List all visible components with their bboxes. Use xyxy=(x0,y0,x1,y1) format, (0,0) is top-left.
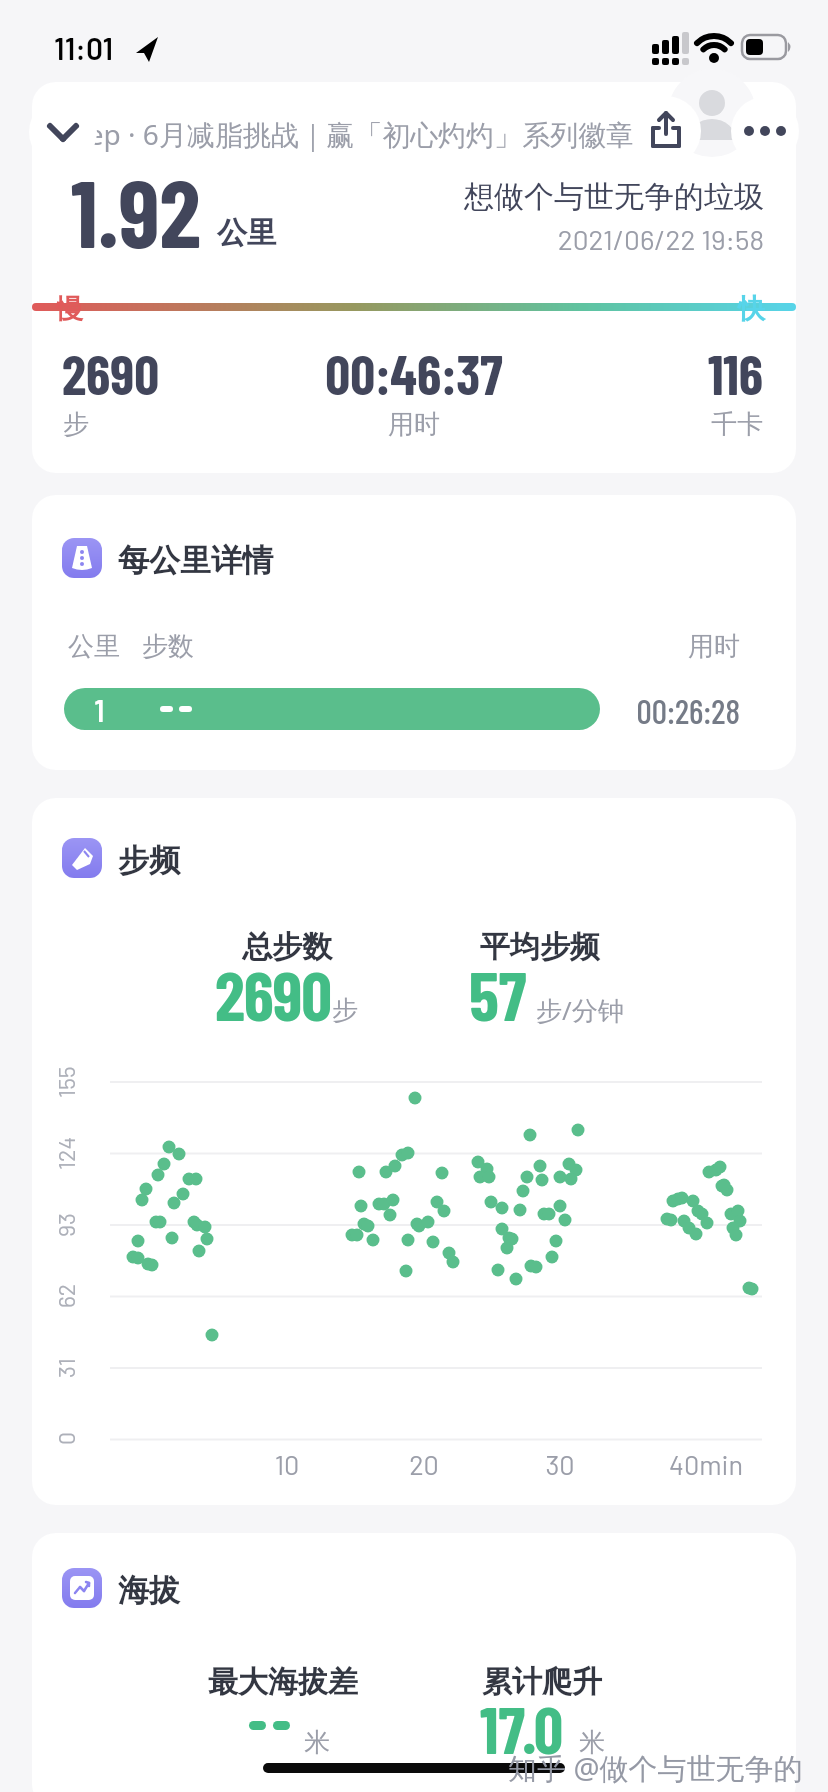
staticText: 米 xyxy=(579,1726,605,1759)
staticText: 93 xyxy=(52,1213,80,1237)
staticText: 平均步频 xyxy=(405,928,675,966)
staticText: 2690 xyxy=(62,340,160,406)
staticText: 30 xyxy=(528,1448,592,1480)
staticText: 62 xyxy=(52,1283,80,1308)
staticText: 快 xyxy=(738,292,765,326)
staticText: 40min xyxy=(656,1448,756,1480)
staticText: 2021/06/22 19:58 xyxy=(400,222,764,256)
staticText: 1.92 xyxy=(71,154,201,267)
staticText: 用时 xyxy=(32,408,796,441)
staticText: 10 xyxy=(255,1448,319,1480)
staticText: 最大海拔差 xyxy=(148,1663,418,1701)
staticText: 17.0 xyxy=(480,1689,564,1767)
staticText: 每公里详情 xyxy=(118,541,273,580)
staticText: 步频 xyxy=(118,841,180,880)
button[interactable]: 1 xyxy=(64,688,600,730)
staticText: 155 xyxy=(52,1066,80,1098)
staticText: 步 xyxy=(63,408,89,441)
staticText: 千卡 xyxy=(432,408,763,441)
staticText: 公里 xyxy=(68,630,120,663)
staticText: 0 xyxy=(52,1432,80,1445)
button[interactable] xyxy=(631,96,701,166)
staticText: 2690 xyxy=(215,953,332,1035)
staticText: 20 xyxy=(392,1448,456,1480)
staticText: eep · 6月减脂挑战｜赢「初心灼灼」系列徽章 ·… xyxy=(72,115,672,153)
staticText: 1 xyxy=(94,692,105,728)
staticText: 步/分钟 xyxy=(536,992,624,1028)
staticText: 累计爬升 xyxy=(407,1663,677,1701)
staticText: 116 xyxy=(432,340,763,406)
staticText: 米 xyxy=(304,1726,330,1759)
staticText: 步 xyxy=(332,994,358,1027)
staticText: 用时 xyxy=(432,630,740,663)
staticText: 知乎 @做个与世无争的垃... xyxy=(508,1748,828,1788)
staticText: 124 xyxy=(52,1136,80,1170)
staticText: 总步数 xyxy=(152,928,422,966)
staticText: 慢 xyxy=(56,292,83,326)
staticText: 00:46:37 xyxy=(32,340,796,406)
button[interactable] xyxy=(731,97,799,165)
staticText: 想做个与世无争的垃圾 xyxy=(400,178,764,216)
staticText: 11:01 xyxy=(54,30,114,66)
staticText: 公里 xyxy=(217,214,277,252)
staticText: 57 xyxy=(469,953,527,1035)
staticText: 00:26:28 xyxy=(432,690,740,731)
staticText: 步数 xyxy=(142,630,194,663)
staticText: 海拔 xyxy=(118,1571,180,1610)
button[interactable] xyxy=(29,98,97,166)
staticText: 31 xyxy=(52,1358,80,1378)
